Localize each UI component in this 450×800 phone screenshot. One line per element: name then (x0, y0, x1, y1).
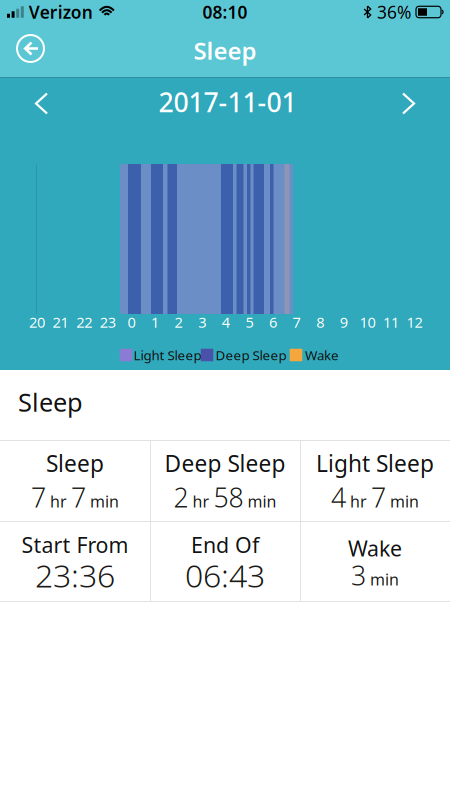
staticText: 20 (29, 312, 45, 332)
staticText: Deep Sleep (215, 346, 286, 364)
staticText: Verizon (29, 0, 93, 23)
staticText: 3 (198, 312, 206, 332)
staticText: 06:43 (185, 554, 265, 596)
staticText: 7 (293, 312, 301, 332)
staticText: Sleep (18, 385, 83, 419)
staticText: Wake (348, 534, 402, 562)
staticText: 1 (151, 312, 159, 332)
staticText: 2017-11-01 (158, 84, 296, 120)
staticText: 6 (269, 312, 277, 332)
staticText: Wake (305, 346, 339, 364)
staticText: 36% (377, 0, 411, 23)
staticText: Sleep (46, 448, 104, 478)
staticText: 9 (340, 312, 348, 332)
staticText: 22 (76, 312, 92, 332)
staticText: 10 (359, 312, 375, 332)
button[interactable] (403, 93, 450, 113)
staticText: 2 (175, 312, 183, 332)
button[interactable] (16, 34, 45, 63)
staticText: 21 (53, 312, 69, 332)
staticText: 11 (383, 312, 399, 332)
staticText: 23:36 (35, 554, 115, 596)
staticText: Light Sleep (133, 346, 201, 364)
staticText: 4 hr 7 min (331, 479, 419, 515)
button[interactable] (0, 93, 47, 113)
staticText: End Of (191, 531, 259, 559)
staticText: 2 hr 58 min (173, 479, 276, 515)
staticText: 5 (245, 312, 253, 332)
staticText: Start From (21, 531, 128, 559)
staticText: Deep Sleep (164, 448, 285, 478)
staticText: 12 (407, 312, 423, 332)
staticText: 23 (100, 312, 116, 332)
staticText: Sleep (193, 35, 256, 66)
staticText: 3 min (351, 557, 399, 593)
staticText: 0 (127, 312, 135, 332)
staticText: Light Sleep (316, 448, 434, 478)
staticText: 4 (222, 312, 230, 332)
staticText: 8 (316, 312, 324, 332)
staticText: 08:10 (202, 0, 247, 23)
staticText: 7 hr 7 min (31, 479, 119, 515)
